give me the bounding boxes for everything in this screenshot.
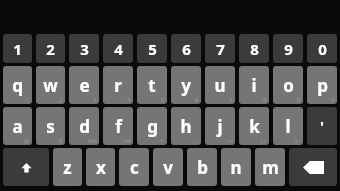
button[interactable]: v [153, 148, 183, 186]
button[interactable]: y [171, 66, 201, 104]
staticText: ' [320, 116, 324, 136]
staticText: y [181, 74, 191, 97]
staticText: #% [88, 137, 97, 145]
button[interactable]: o [273, 66, 303, 104]
staticText: , [281, 178, 283, 186]
staticText: " [332, 137, 335, 145]
staticText: (< [261, 137, 267, 145]
staticText: 2 [59, 96, 63, 104]
staticText: 4 [127, 96, 131, 104]
staticText: 3 [80, 39, 89, 59]
staticText: k [249, 115, 260, 138]
button[interactable]: z [53, 148, 82, 186]
button[interactable]: Shift [3, 148, 49, 186]
staticText: x [96, 156, 106, 179]
button[interactable]: 9 [273, 34, 303, 63]
staticText: -_ [194, 137, 199, 145]
staticText: 5 [161, 96, 165, 104]
button[interactable]: 5 [137, 34, 167, 63]
staticText: 6 [195, 96, 199, 104]
staticText: 0 [331, 96, 335, 104]
staticText: 1 [26, 96, 30, 104]
button[interactable]: m [255, 148, 285, 186]
staticText: m [262, 156, 279, 179]
staticText: n [230, 156, 242, 179]
button[interactable]: p [307, 66, 337, 104]
button[interactable]: f [103, 107, 133, 145]
button[interactable]: 3 [69, 34, 99, 63]
button[interactable]: 2 [36, 34, 65, 63]
button[interactable]: e [69, 66, 99, 104]
button[interactable]: x [86, 148, 115, 186]
staticText: 0 [318, 39, 327, 59]
button[interactable]: 7 [205, 34, 235, 63]
button[interactable]: Backspace [289, 148, 337, 186]
staticText: u [214, 74, 226, 97]
staticText: r [114, 74, 122, 97]
staticText: ^& [123, 137, 131, 145]
button[interactable]: ' [307, 107, 337, 145]
button[interactable]: 6 [171, 34, 201, 63]
staticText: 6 [182, 39, 191, 59]
staticText: o [283, 74, 294, 97]
staticText: j [217, 115, 223, 138]
staticText: 7 [216, 39, 225, 59]
staticText: . [247, 178, 249, 186]
button[interactable]: i [239, 66, 269, 104]
staticText: d [79, 115, 90, 138]
staticText: q [12, 74, 23, 97]
button[interactable]: a [3, 107, 32, 145]
staticText: 9 [284, 39, 293, 59]
staticText: a [12, 115, 23, 138]
staticText: f [115, 115, 122, 138]
button[interactable]: s [36, 107, 65, 145]
staticText: s [46, 115, 55, 138]
button[interactable]: k [239, 107, 269, 145]
staticText: i [251, 74, 257, 97]
staticText: c [130, 156, 139, 179]
staticText: t [148, 74, 156, 97]
button[interactable]: r [103, 66, 133, 104]
button[interactable]: t [137, 66, 167, 104]
staticText: @ [24, 137, 30, 145]
staticText: 4 [114, 39, 123, 59]
staticText: 9 [297, 96, 301, 104]
staticText: z [63, 156, 72, 179]
button[interactable]: b [187, 148, 217, 186]
button[interactable]: g [137, 107, 167, 145]
staticText: l [285, 115, 291, 138]
staticText: $ [59, 137, 63, 145]
button[interactable]: 8 [239, 34, 269, 63]
staticText: 3 [93, 96, 97, 104]
button[interactable]: l [273, 107, 303, 145]
button[interactable]: n [221, 148, 251, 186]
staticText: *· [160, 137, 165, 145]
staticText: 2 [46, 39, 55, 59]
staticText: w [43, 74, 58, 97]
button[interactable]: 1 [3, 34, 32, 63]
staticText: g [147, 115, 158, 138]
button[interactable]: c [119, 148, 149, 186]
staticText: 7 [229, 96, 233, 104]
staticText: += [226, 137, 233, 145]
staticText: e [79, 74, 90, 97]
button[interactable]: d [69, 107, 99, 145]
staticText: h [180, 115, 192, 138]
staticText: p [317, 74, 328, 97]
button[interactable]: h [171, 107, 201, 145]
button[interactable]: 4 [103, 34, 133, 63]
button[interactable]: u [205, 66, 235, 104]
button[interactable]: q [3, 66, 32, 104]
staticText: b [197, 156, 208, 179]
staticText: 8 [263, 96, 267, 104]
staticText: v [163, 156, 173, 179]
button[interactable]: w [36, 66, 65, 104]
staticText: 5 [148, 39, 157, 59]
staticText: 8 [250, 39, 259, 59]
button[interactable]: 0 [307, 34, 337, 63]
staticText: )> [295, 137, 301, 145]
button[interactable]: j [205, 107, 235, 145]
staticText: 1 [13, 39, 22, 59]
